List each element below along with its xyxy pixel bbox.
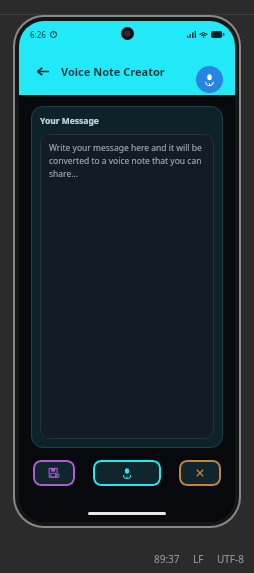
staticText: Your Message (40, 115, 99, 127)
staticText: 89:37 (154, 552, 180, 566)
button[interactable]: Record (196, 66, 223, 93)
button[interactable]: Record voice note (93, 460, 161, 486)
button[interactable]: Back (29, 58, 55, 84)
button[interactable]: Clear (179, 460, 221, 486)
staticText: UTF-8 (217, 552, 244, 566)
staticText: LF (193, 552, 204, 566)
staticText: Voice Note Creator (61, 64, 165, 79)
staticText: 6:26 (30, 29, 46, 40)
button[interactable]: Save draft (33, 460, 75, 486)
button[interactable]: Write your message here and it will be c… (40, 134, 214, 439)
staticText: Write your message here and it will be c… (49, 142, 205, 180)
